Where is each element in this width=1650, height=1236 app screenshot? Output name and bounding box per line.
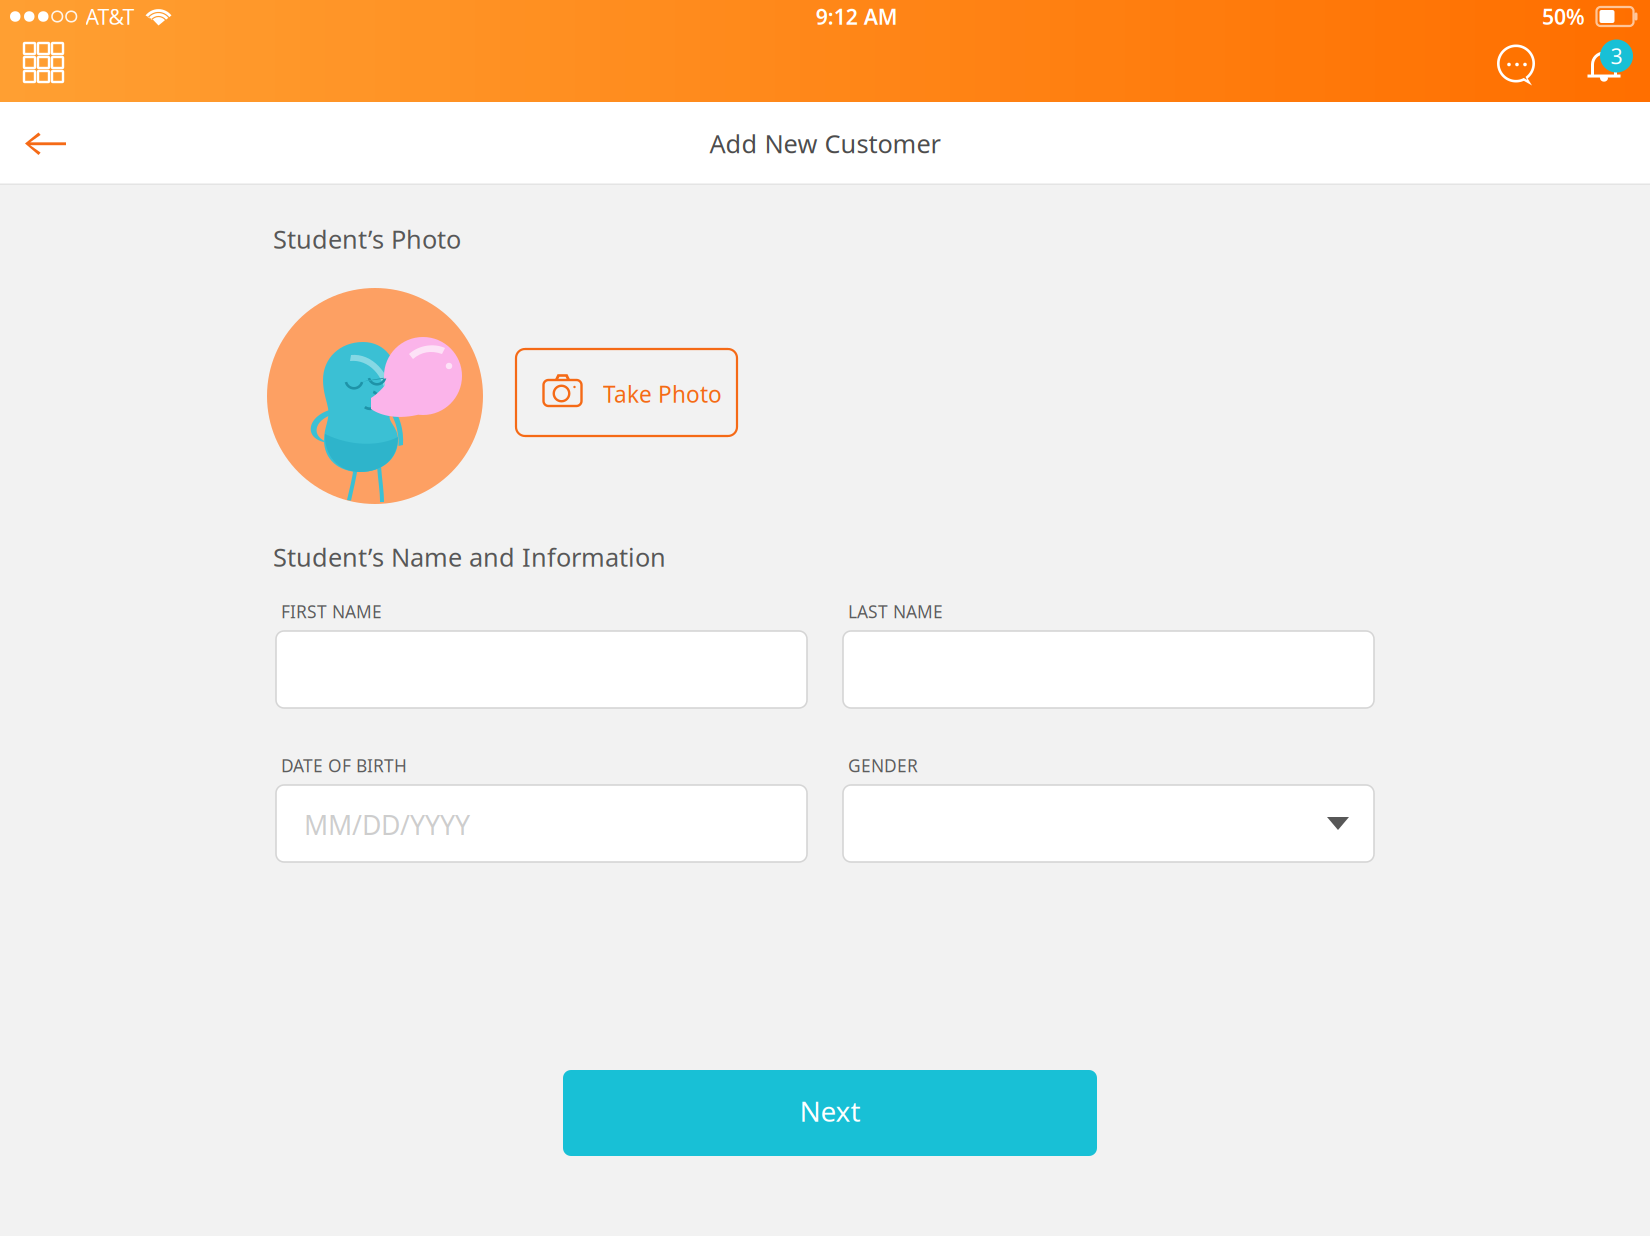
staticText: LAST NAME: [848, 600, 943, 623]
staticText: GENDER: [848, 754, 918, 777]
staticText: DATE OF BIRTH: [281, 754, 407, 777]
staticText: Take Photo: [603, 379, 722, 409]
button[interactable]: Back: [0, 114, 86, 173]
button[interactable]: GENDER: [843, 785, 1374, 862]
staticText: FIRST NAME: [281, 600, 382, 623]
button[interactable]: Menu: [0, 32, 73, 101]
staticText: Student’s Name and Information: [273, 540, 666, 574]
button[interactable]: Take Photo: [516, 349, 737, 436]
staticText: Next: [799, 1092, 860, 1130]
staticText: 3: [1610, 42, 1622, 70]
button[interactable]: LAST NAME: [843, 631, 1374, 708]
button[interactable]: Next: [563, 1070, 1097, 1156]
staticText: 50%: [1542, 2, 1585, 31]
staticText: 9:12 AM: [816, 2, 898, 31]
button[interactable]: FIRST NAME: [276, 631, 807, 708]
staticText: MM/DD/YYYY: [304, 807, 470, 842]
button[interactable]: Messages: [1481, 43, 1553, 89]
button[interactable]: Notifications: [1553, 44, 1650, 88]
staticText: AT&T: [85, 2, 134, 31]
staticText: Add New Customer: [709, 127, 940, 160]
staticText: Student’s Photo: [273, 222, 461, 256]
button[interactable]: DATE OF BIRTH: [276, 785, 807, 862]
